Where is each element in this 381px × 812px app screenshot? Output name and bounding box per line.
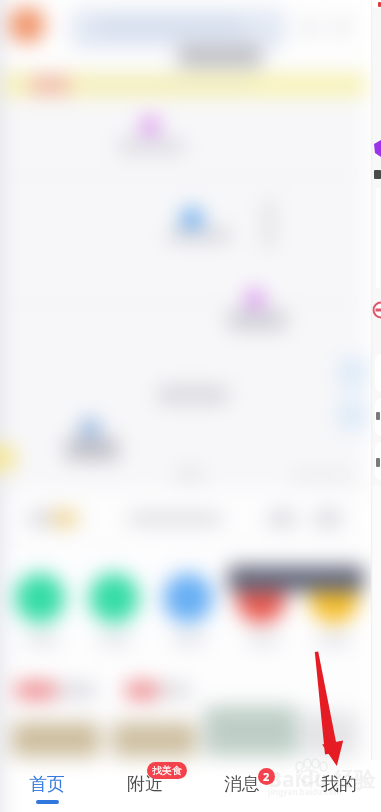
staticText: 找美食	[152, 764, 182, 777]
button[interactable]: 附近	[96, 756, 193, 812]
button[interactable]: 我的	[290, 756, 381, 812]
staticText: 首页	[29, 773, 65, 796]
button[interactable]: 首页	[0, 756, 96, 812]
staticText: jingyan.baidu.com	[268, 786, 342, 797]
staticText: 消息	[224, 773, 260, 796]
staticText: Baidu 经验	[268, 765, 376, 794]
button[interactable]: 消息	[193, 756, 290, 812]
staticText: 附近	[127, 773, 163, 796]
staticText: 2	[263, 769, 270, 784]
staticText: 我的	[321, 773, 357, 796]
